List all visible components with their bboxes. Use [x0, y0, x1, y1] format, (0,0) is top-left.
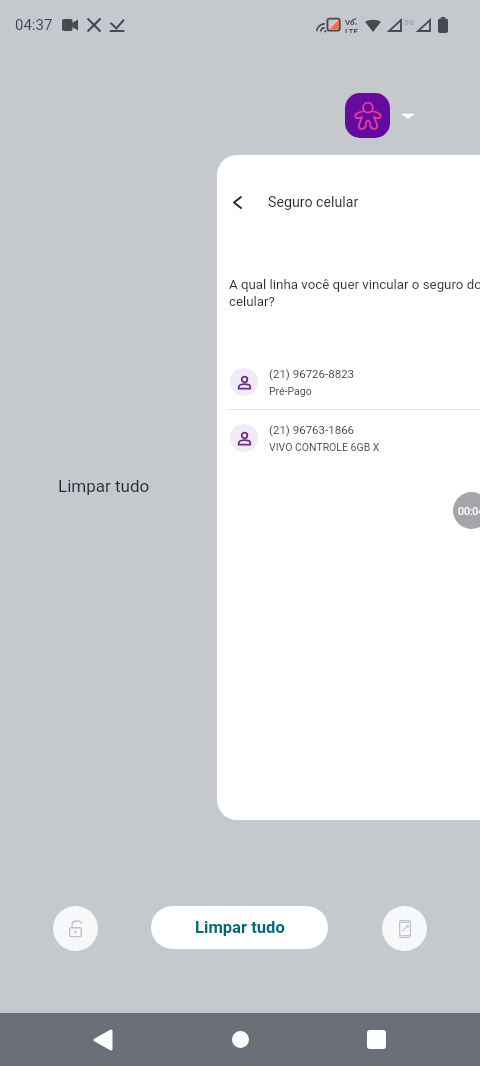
staticText: VIVO CONTROLE 6GB X	[269, 441, 380, 453]
staticText: Seguro celular	[268, 194, 359, 211]
button[interactable]: Back	[77, 1013, 129, 1066]
button[interactable]: Back	[220, 185, 254, 219]
button[interactable]: Back	[217, 155, 480, 820]
staticText: Pré-Pago	[269, 385, 312, 397]
button[interactable]: App icon	[345, 93, 390, 138]
button[interactable]: Screenshot	[382, 906, 427, 951]
button[interactable]: Home	[214, 1013, 266, 1066]
button[interactable]: Recents	[350, 1013, 402, 1066]
staticText: 5G	[404, 18, 415, 27]
staticText: Limpar tudo	[58, 476, 150, 496]
staticText: Limpar tudo	[195, 918, 285, 937]
button[interactable]: More options	[401, 109, 415, 123]
button[interactable]: (21) 96763-1866	[217, 410, 480, 465]
staticText: 00:04	[458, 505, 480, 517]
button[interactable]: Limpar tudo	[151, 906, 328, 949]
staticText: 04:37	[15, 16, 53, 34]
staticText: Vo	[345, 18, 355, 27]
staticText: A qual linha você quer vincular o seguro…	[229, 277, 480, 309]
button[interactable]: (21) 96726-8823	[217, 354, 480, 409]
button[interactable]: Timer	[453, 492, 480, 529]
button[interactable]: Lock app	[53, 906, 98, 951]
staticText: (21) 96726-8823	[269, 367, 355, 380]
staticText: LTE	[345, 27, 358, 33]
staticText: (21) 96763-1866	[269, 423, 355, 436]
